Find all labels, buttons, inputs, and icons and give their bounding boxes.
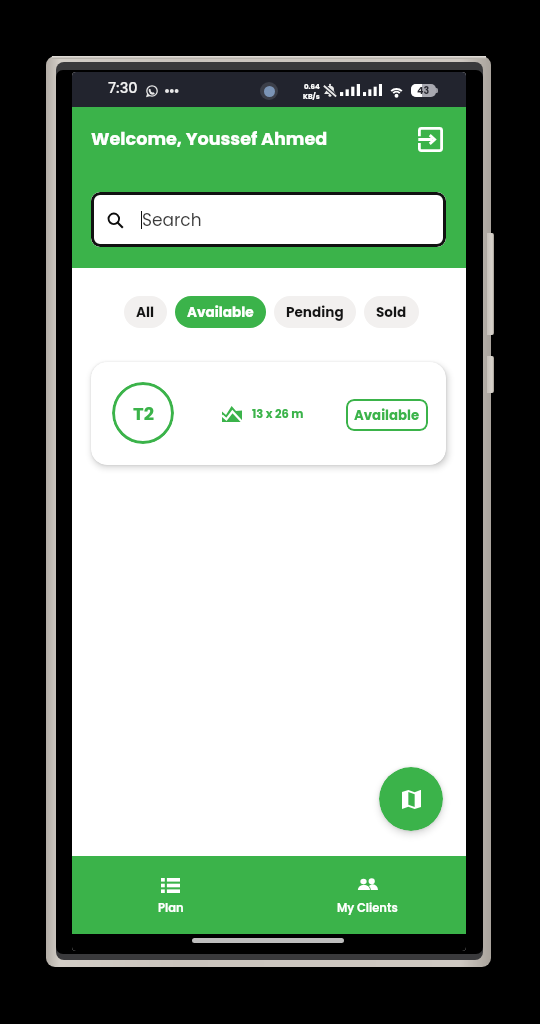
staticText: Available bbox=[354, 406, 420, 425]
staticText: 43 bbox=[417, 84, 430, 97]
staticText: 7:30 bbox=[108, 78, 138, 98]
button[interactable]: Available bbox=[346, 399, 428, 431]
staticText: My Clients bbox=[337, 900, 398, 916]
button[interactable]: T2 bbox=[91, 362, 446, 465]
button[interactable]: Available bbox=[175, 296, 266, 328]
staticText: 13 x 26 m bbox=[252, 406, 304, 422]
staticText: Plan bbox=[158, 900, 184, 916]
button[interactable]: Search bbox=[91, 192, 446, 247]
staticText: Welcome, Youssef Ahmed bbox=[91, 127, 328, 152]
staticText: Sold bbox=[376, 303, 407, 322]
staticText: T2 bbox=[133, 401, 154, 426]
staticText: 0.64 bbox=[304, 82, 320, 92]
button[interactable]: Sold bbox=[364, 296, 419, 328]
button[interactable]: All bbox=[124, 296, 167, 328]
button[interactable]: My Clients bbox=[269, 856, 466, 934]
staticText: Pending bbox=[286, 303, 344, 322]
button[interactable]: Pending bbox=[274, 296, 356, 328]
staticText: All bbox=[136, 303, 155, 322]
button[interactable]: Open map bbox=[379, 767, 443, 831]
button[interactable]: Plan bbox=[72, 856, 269, 934]
button[interactable]: Logout bbox=[414, 123, 446, 155]
staticText: Search bbox=[142, 208, 202, 232]
staticText: KB/s bbox=[303, 92, 320, 102]
staticText: Available bbox=[187, 303, 254, 322]
